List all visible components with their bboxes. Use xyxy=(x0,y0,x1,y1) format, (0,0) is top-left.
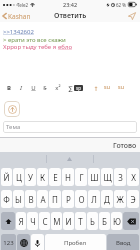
staticText: П xyxy=(52,194,58,205)
staticText: Х xyxy=(131,172,136,183)
button[interactable]: Kashan xyxy=(0,9,34,23)
button[interactable]: ↑ xyxy=(91,83,101,93)
button[interactable]: К xyxy=(37,168,48,186)
button[interactable]: Backspace xyxy=(123,212,139,230)
staticText: ↑ xyxy=(93,85,99,92)
button[interactable]: I xyxy=(16,83,26,93)
staticText: Ь xyxy=(90,216,95,227)
staticText: sub xyxy=(116,83,126,93)
staticText: Б xyxy=(102,216,107,227)
button[interactable]: Ь xyxy=(87,212,98,230)
staticText: Пробел xyxy=(64,239,87,247)
staticText: 23:42 xyxy=(63,1,78,8)
button[interactable]: Е xyxy=(49,168,61,186)
button[interactable]: Р xyxy=(62,190,74,208)
button[interactable]: У xyxy=(25,168,36,186)
staticText: Ы xyxy=(15,194,22,205)
button[interactable]: Spoiler xyxy=(74,85,83,91)
staticText: B xyxy=(7,84,11,92)
staticText: Э xyxy=(130,194,136,205)
staticText: Kashan xyxy=(8,12,31,21)
button[interactable]: x² xyxy=(53,83,63,93)
button[interactable]: Щ xyxy=(101,168,113,186)
button[interactable]: Л xyxy=(88,190,100,208)
button[interactable]: Ю xyxy=(111,212,122,230)
button[interactable]: П xyxy=(49,190,61,208)
staticText: 62 % xyxy=(116,2,127,8)
button[interactable]: Тема xyxy=(3,121,137,133)
button[interactable]: Х xyxy=(127,168,139,186)
staticText: Ч xyxy=(30,216,36,227)
button[interactable]: Switch language xyxy=(17,234,30,250)
button[interactable]: Send xyxy=(124,9,140,23)
button[interactable]: Я xyxy=(16,212,26,230)
staticText: О xyxy=(78,194,85,205)
button[interactable]: З xyxy=(114,168,126,186)
button[interactable]: Готово xyxy=(109,138,140,153)
staticText: С xyxy=(42,216,48,227)
button[interactable]: Dictation xyxy=(31,234,44,250)
staticText: И xyxy=(65,216,72,227)
staticText: Ш xyxy=(90,172,99,183)
button[interactable]: И xyxy=(63,212,74,230)
button[interactable]: Г xyxy=(75,168,87,186)
button[interactable]: Ч xyxy=(27,212,38,230)
staticText: Т xyxy=(78,216,83,227)
staticText: x² xyxy=(55,84,61,92)
button[interactable]: ∑ xyxy=(65,83,75,93)
button[interactable]: sup xyxy=(102,83,112,93)
button[interactable]: С xyxy=(39,212,50,230)
button[interactable]: Ж xyxy=(114,190,126,208)
staticText: У xyxy=(28,172,33,183)
button[interactable]: М xyxy=(51,212,62,230)
button[interactable]: Suggestion xyxy=(46,152,93,166)
button[interactable]: Ы xyxy=(13,190,24,208)
button[interactable]: Э xyxy=(127,190,139,208)
button[interactable]: А xyxy=(37,190,48,208)
button[interactable]: Ц xyxy=(13,168,24,186)
staticText: Я xyxy=(18,216,24,227)
staticText: Й xyxy=(3,172,10,183)
button[interactable]: Ввод xyxy=(107,234,139,250)
staticText: S xyxy=(43,84,47,92)
button[interactable]: B xyxy=(4,83,14,93)
button[interactable]: sub xyxy=(116,83,126,93)
button[interactable]: Ш xyxy=(88,168,100,186)
staticText: Tele2 xyxy=(17,2,28,8)
button[interactable]: U xyxy=(28,83,38,93)
staticText: sp xyxy=(76,85,81,91)
staticText: Ю xyxy=(113,216,121,227)
staticText: >>1342602 xyxy=(3,28,34,36)
button[interactable]: Д xyxy=(101,190,113,208)
staticText: Тема xyxy=(6,123,21,131)
button[interactable]: О xyxy=(75,190,87,208)
button[interactable]: Ф xyxy=(1,190,12,208)
button[interactable]: Н xyxy=(62,168,74,186)
staticText: 123 xyxy=(3,239,14,247)
staticText: Хррор тыду тебе я xyxy=(3,43,58,51)
button[interactable]: Т xyxy=(75,212,86,230)
button[interactable]: Shift xyxy=(1,212,15,230)
staticText: Ф xyxy=(3,194,10,205)
button[interactable]: Й xyxy=(1,168,12,186)
staticText: Ц xyxy=(16,172,22,183)
button[interactable]: S xyxy=(40,83,50,93)
button[interactable]: 123 xyxy=(1,234,16,250)
button[interactable]: Пробел xyxy=(45,234,106,250)
button[interactable]: Б xyxy=(99,212,110,230)
button[interactable]: В xyxy=(25,190,36,208)
staticText: Ответить xyxy=(54,11,87,21)
button[interactable]: ебло xyxy=(58,43,72,51)
staticText: З xyxy=(118,172,123,183)
staticText: А xyxy=(40,194,46,205)
button[interactable]: Attach file xyxy=(4,101,20,117)
staticText: Щ xyxy=(103,172,112,183)
staticText: В xyxy=(28,194,34,205)
staticText: Л xyxy=(91,194,97,205)
staticText: > ерати это все скажи xyxy=(3,36,66,44)
staticText: ∑ xyxy=(68,85,73,92)
staticText: Д xyxy=(104,194,110,205)
staticText: Е xyxy=(53,172,58,183)
